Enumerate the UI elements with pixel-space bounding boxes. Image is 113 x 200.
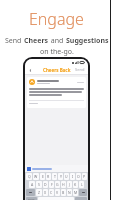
button[interactable]	[27, 167, 52, 171]
button[interactable]: H	[61, 181, 66, 188]
button[interactable]: C	[49, 189, 54, 196]
staticText: X	[44, 190, 47, 195]
staticText: Z	[38, 190, 41, 195]
staticText: Engage	[29, 8, 84, 30]
button[interactable]: V	[55, 189, 60, 196]
staticText: T	[54, 174, 56, 179]
staticText: I	[72, 174, 74, 179]
button[interactable]: G	[55, 181, 60, 188]
button[interactable]: I	[70, 173, 75, 180]
button[interactable]: Numbers	[26, 197, 37, 200]
staticText: on the-go.	[40, 47, 74, 57]
staticText: U	[65, 174, 68, 179]
button[interactable]: N	[67, 189, 72, 196]
staticText: S	[38, 182, 40, 187]
staticText: N	[68, 190, 71, 195]
button[interactable]: X	[43, 189, 48, 196]
staticText: A	[31, 182, 34, 187]
button[interactable]: M	[73, 189, 78, 196]
staticText: Y	[60, 174, 62, 179]
button[interactable]: K	[73, 181, 78, 188]
staticText: L	[81, 182, 83, 187]
staticText: G	[56, 182, 59, 187]
staticText: Suggestions	[66, 36, 109, 46]
staticText: K	[74, 182, 77, 187]
button[interactable]: Backspace	[79, 189, 87, 196]
staticText: W	[34, 174, 38, 179]
button[interactable]: O	[76, 173, 81, 180]
staticText: Q	[28, 174, 31, 179]
staticText: F	[51, 182, 53, 187]
button[interactable]: Z	[36, 189, 42, 196]
button[interactable]: B	[61, 189, 66, 196]
staticText: B	[62, 190, 65, 195]
button[interactable]: A	[29, 181, 35, 188]
button[interactable]: P	[82, 173, 87, 180]
button[interactable]: W	[33, 173, 39, 180]
staticText: and	[49, 36, 66, 46]
button[interactable]: L	[79, 181, 84, 188]
staticText: Cheers Back	[43, 67, 71, 73]
button[interactable]: Q	[26, 173, 32, 180]
button[interactable]: R	[46, 173, 51, 180]
staticText: Cheers	[24, 36, 49, 46]
staticText: Send	[5, 36, 24, 46]
button[interactable]: J	[67, 181, 72, 188]
button[interactable]: T	[52, 173, 57, 180]
button[interactable]: D	[43, 181, 48, 188]
button[interactable]: Shift	[26, 189, 35, 196]
staticText: R	[47, 174, 50, 179]
staticText: V	[56, 190, 59, 195]
staticText: ?123	[28, 199, 35, 200]
button[interactable]: S	[36, 181, 42, 188]
button[interactable]: Back	[27, 67, 33, 73]
staticText: P	[83, 174, 86, 179]
button[interactable]: F	[49, 181, 54, 188]
staticText: E	[42, 174, 44, 179]
button[interactable]: Send	[75, 67, 85, 72]
staticText: D	[44, 182, 47, 187]
staticText: O	[77, 174, 80, 179]
button[interactable]: Y	[58, 173, 63, 180]
button[interactable]	[27, 77, 86, 108]
button[interactable]: U	[64, 173, 69, 180]
staticText: M	[74, 190, 78, 195]
staticText: C	[50, 190, 53, 195]
staticText: H	[62, 182, 65, 187]
button[interactable]: E	[40, 173, 45, 180]
staticText: J	[69, 182, 70, 187]
